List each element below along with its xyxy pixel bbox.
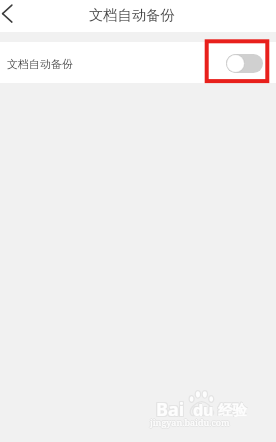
button[interactable]: 文档自动备份 xyxy=(0,42,276,83)
staticText: jingyan.baidu.com xyxy=(150,415,230,427)
staticText: Bai xyxy=(155,398,184,423)
staticText: Bai xyxy=(157,398,186,423)
staticText: du xyxy=(193,398,214,420)
staticText: 经验 xyxy=(217,401,246,419)
staticText: Bai xyxy=(157,396,186,421)
staticText: Bai xyxy=(155,396,184,421)
staticText: du xyxy=(193,399,214,421)
staticText: jingyan.baidu.com xyxy=(150,416,230,428)
staticText: jingyan.baidu.com xyxy=(151,416,231,428)
staticText: jingyan.baidu.com xyxy=(150,416,230,428)
staticText: jingyan.baidu.com xyxy=(150,416,230,428)
button[interactable]: Auto backup switch, off xyxy=(226,54,263,73)
staticText: Bai xyxy=(155,397,184,422)
staticText: 经验 xyxy=(218,401,247,419)
staticText: jingyan.baidu.com xyxy=(150,416,230,428)
staticText: Bai xyxy=(156,397,185,422)
staticText: Bai xyxy=(156,398,185,423)
staticText: 经验 xyxy=(217,400,246,418)
staticText: 经验 xyxy=(218,401,247,419)
staticText: 经验 xyxy=(218,401,247,419)
staticText: 文档自动备份 xyxy=(7,57,73,71)
staticText: du xyxy=(192,399,213,421)
staticText: du xyxy=(193,398,214,420)
staticText: 经验 xyxy=(217,401,246,419)
staticText: du xyxy=(193,399,214,421)
staticText: Bai xyxy=(156,396,185,421)
staticText: jingyan.baidu.com xyxy=(150,417,230,429)
staticText: du xyxy=(192,399,213,421)
staticText: 经验 xyxy=(218,401,247,419)
staticText: 经验 xyxy=(218,400,247,418)
staticText: jingyan.baidu.com xyxy=(150,416,230,428)
staticText: Bai xyxy=(157,397,186,422)
staticText: 文档自动备份 xyxy=(89,6,175,24)
staticText: jingyan.baidu.com xyxy=(149,416,229,428)
button[interactable]: Back xyxy=(0,0,26,28)
staticText: du xyxy=(193,399,214,421)
staticText: 经验 xyxy=(218,400,247,418)
staticText: du xyxy=(192,398,213,420)
staticText: du xyxy=(193,399,214,421)
